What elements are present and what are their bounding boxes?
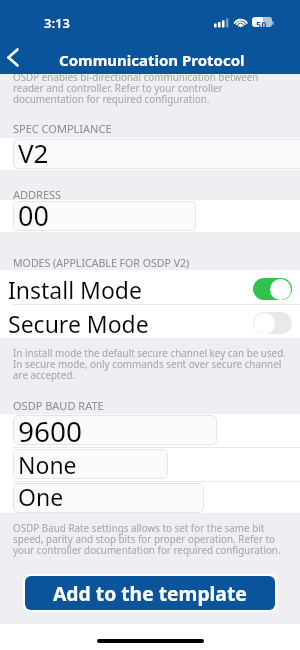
button[interactable] (13, 415, 217, 445)
staticText: In install mode the default secure chann… (13, 346, 286, 381)
staticText: 50 (256, 18, 267, 30)
staticText: ADDRESS (13, 187, 62, 202)
staticText: OSDP enables bi-directional communicatio… (13, 70, 259, 105)
button[interactable]: Secure Mode (0, 306, 300, 340)
staticText: Add to the template (53, 580, 247, 606)
button[interactable]: Spec compliance value (13, 139, 300, 169)
staticText: OSDP Baud Rate settings allows to set fo… (13, 521, 281, 556)
button[interactable]: Add to the template (25, 576, 275, 610)
staticText: V2 (18, 135, 49, 170)
button[interactable]: Back (0, 42, 28, 72)
button[interactable]: Install Mode (0, 272, 300, 306)
staticText: None (18, 449, 77, 480)
staticText: OSDP BAUD RATE (13, 398, 104, 413)
staticText: Install Mode (8, 274, 142, 305)
button[interactable] (13, 201, 196, 231)
staticText: One (18, 481, 64, 512)
button[interactable] (13, 483, 204, 513)
staticText: Secure Mode (8, 308, 149, 339)
staticText: SPEC COMPLIANCE (13, 121, 112, 136)
staticText: 00 (18, 197, 49, 234)
staticText: MODES (APPLICABLE FOR OSDP V2) (13, 256, 190, 270)
button[interactable] (13, 449, 168, 479)
staticText: Communication Protocol (59, 50, 245, 70)
staticText: 3:13 (44, 14, 70, 32)
staticText: 9600 (18, 412, 83, 450)
